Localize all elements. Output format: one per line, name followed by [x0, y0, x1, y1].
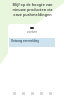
staticText: Blijf op de hoogte van nieuwe producten …	[12, 2, 53, 17]
button[interactable]: Tab	[11, 90, 17, 96]
button[interactable]: Tab	[38, 90, 44, 96]
button[interactable]: Tab	[29, 90, 35, 96]
staticText: zoeken	[27, 30, 38, 34]
button[interactable]: Ontvang een melding	[9, 38, 55, 47]
staticText: Ontvang een melding	[11, 39, 39, 43]
button[interactable]: Tab	[20, 90, 26, 96]
button[interactable]: Tab	[47, 90, 53, 96]
